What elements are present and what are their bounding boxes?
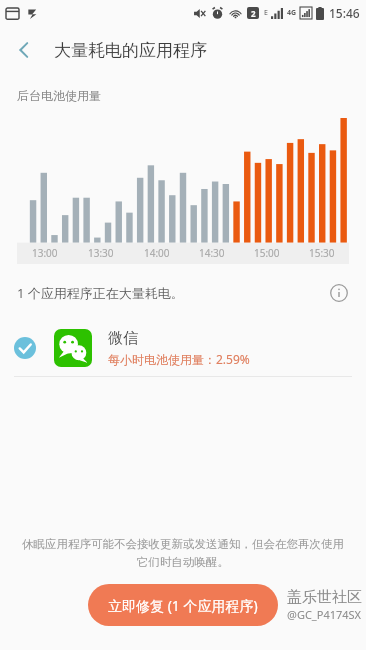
staticText: 微信 [108, 329, 138, 348]
button[interactable]: 微信 [0, 320, 366, 376]
staticText: 大量耗电的应用程序 [54, 40, 207, 61]
staticText: 盖乐世社区 [287, 588, 362, 607]
staticText: 13:00 [32, 246, 58, 260]
staticText: 13:30 [88, 246, 114, 260]
staticText: 14:00 [144, 246, 170, 260]
staticText: 15:00 [254, 246, 280, 260]
staticText: 15:46 [329, 5, 360, 21]
staticText: 2 [251, 8, 256, 19]
staticText: 15:30 [309, 246, 335, 260]
staticText: 14:30 [199, 246, 225, 260]
staticText: 1 个应用程序正在大量耗电。 [17, 284, 184, 302]
staticText: E [264, 8, 268, 18]
staticText: 立即修复 (1 个应用程序) [108, 596, 258, 615]
staticText: @GC_P4174SX [287, 607, 362, 622]
staticText: 每小时电池使用量：2.59% [108, 351, 250, 367]
staticText: 后台电池使用量 [17, 88, 101, 103]
staticText: 休眠应用程序可能不会接收更新或发送通知，但会在您再次使用它们时自动唤醒。 [22, 537, 344, 570]
staticText: 4G [287, 8, 297, 18]
button[interactable]: Back [0, 26, 48, 74]
button[interactable]: 立即修复 (1 个应用程序) [88, 584, 278, 626]
button[interactable]: More information [326, 280, 352, 306]
